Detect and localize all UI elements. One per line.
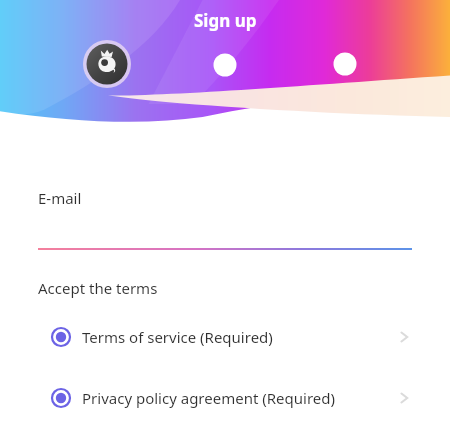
button[interactable]: Privacy policy agreement (Required) [0, 381, 450, 415]
button[interactable]: Step 2 [214, 54, 237, 77]
button[interactable]: Profile avatar [84, 41, 130, 87]
button[interactable]: Step 3 [334, 53, 357, 76]
button[interactable]: Terms of service (Required) [0, 320, 450, 354]
staticText: Privacy policy agreement (Required) [82, 388, 335, 408]
staticText: Accept the terms [38, 278, 158, 298]
staticText: Sign up [194, 9, 257, 32]
staticText: Terms of service (Required) [82, 327, 273, 347]
staticText: E-mail [38, 188, 82, 208]
